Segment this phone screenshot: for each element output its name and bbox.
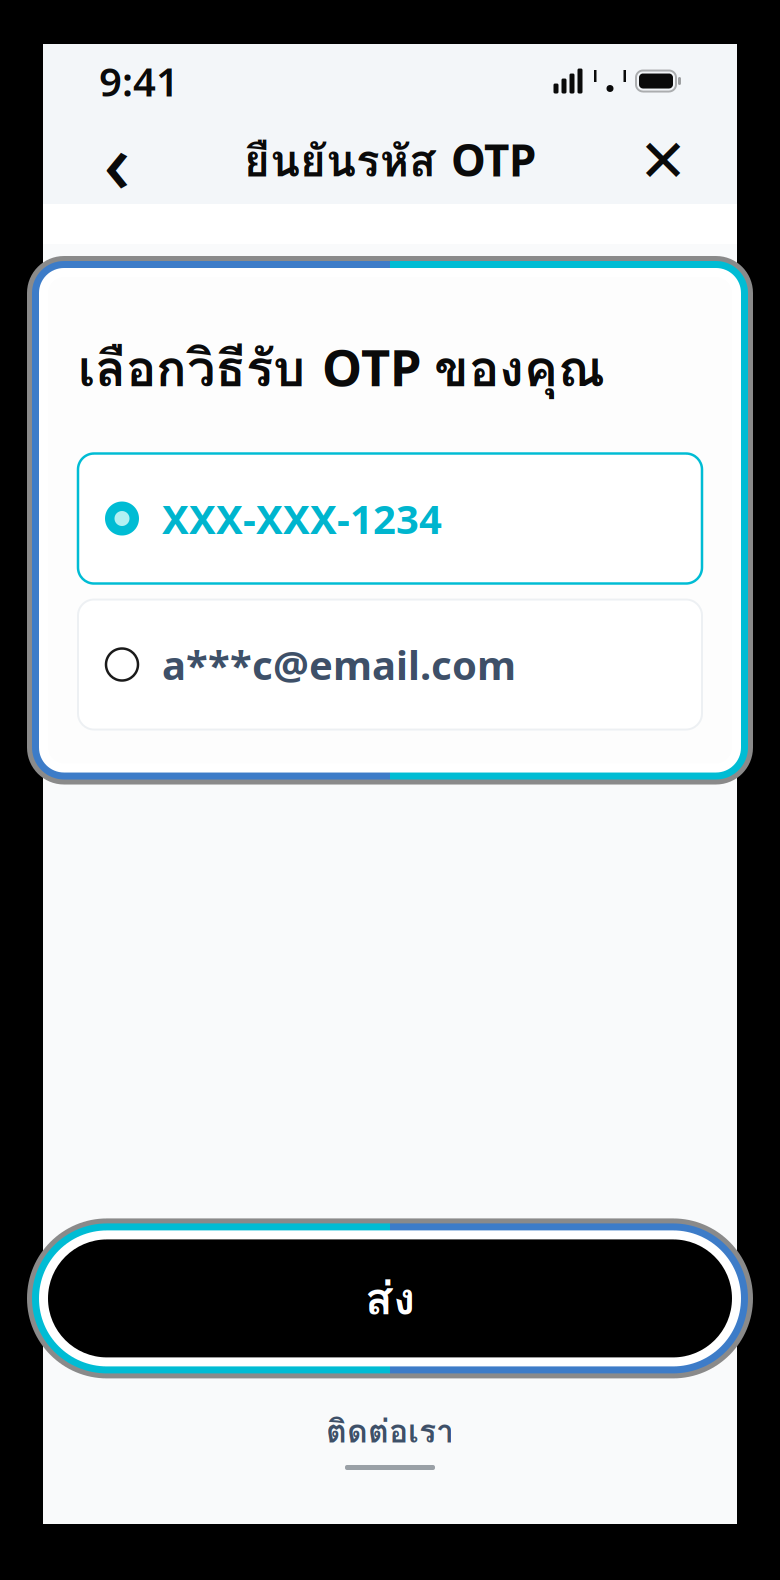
staticText: XXX-XXX-1234 [162,492,442,545]
button[interactable]: Back [85,129,149,193]
button[interactable]: XXX-XXX-1234 [78,453,702,583]
staticText: เลือกวิธีรับ OTP ของคุณ [78,329,605,407]
button[interactable]: ส่ง [48,1239,732,1357]
staticText: a***c@email.com [162,638,516,691]
staticText: ✕ [638,128,687,194]
button[interactable]: ติดต่อเรา [282,1378,498,1488]
staticText: ยืนยันรหัส OTP [244,127,536,195]
staticText: ‹ [103,106,130,216]
staticText: ส่ง [365,1263,415,1333]
button[interactable]: Close [631,129,695,193]
staticText: 9:41 [99,54,179,107]
staticText: ติดต่อเรา [326,1406,454,1456]
button[interactable]: a***c@email.com [78,599,702,729]
